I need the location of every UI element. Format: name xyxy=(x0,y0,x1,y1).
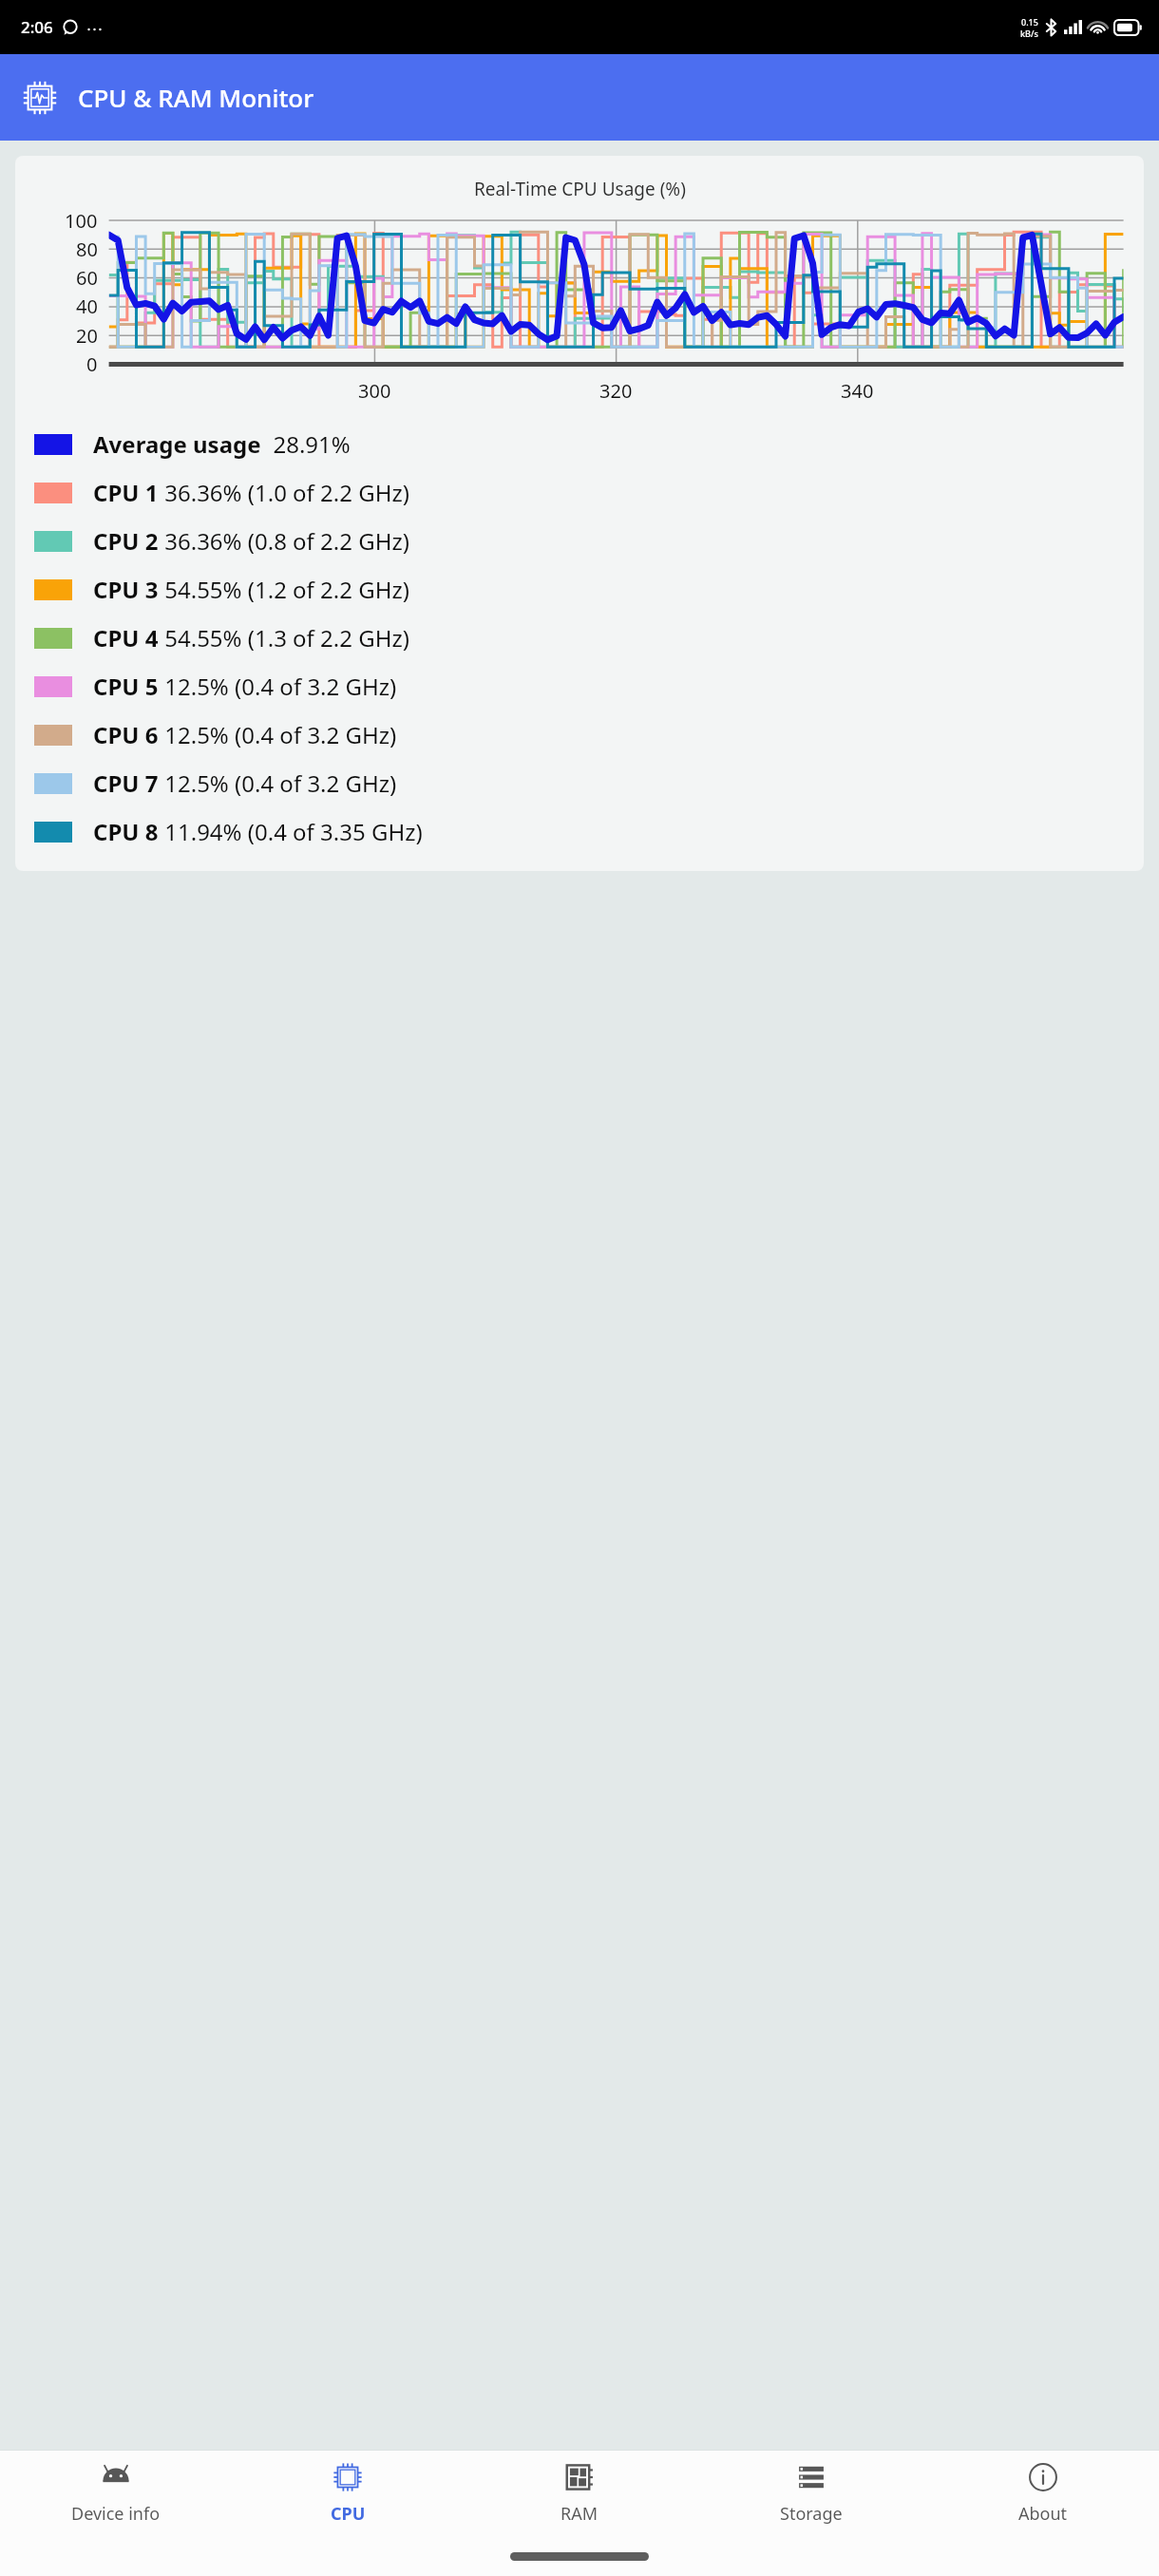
button[interactable]: CPU 2 xyxy=(15,517,1144,565)
button[interactable]: CPU 7 xyxy=(15,759,1144,807)
staticText: 300 xyxy=(358,378,391,404)
staticText: 0 xyxy=(86,351,98,377)
staticText: 28.91% xyxy=(261,428,351,460)
staticText: 20 xyxy=(76,323,98,349)
button[interactable]: CPU 5 xyxy=(15,662,1144,710)
staticText: Storage xyxy=(780,2502,843,2526)
staticText: CPU 8 xyxy=(93,816,159,847)
button[interactable]: CPU 8 xyxy=(15,807,1144,856)
staticText: 36.36% (0.8 of 2.2 GHz) xyxy=(159,525,409,557)
staticText: 12.5% (0.4 of 3.2 GHz) xyxy=(159,719,397,750)
staticText: Device info xyxy=(71,2502,161,2526)
staticText: kB/s xyxy=(1020,28,1038,39)
staticText: CPU 1 xyxy=(93,477,159,508)
staticText: 11.94% (0.4 of 3.35 GHz) xyxy=(159,816,423,847)
staticText: 54.55% (1.2 of 2.2 GHz) xyxy=(159,574,409,605)
staticText: 12.5% (0.4 of 3.2 GHz) xyxy=(159,671,397,702)
button[interactable]: Storage xyxy=(695,2451,927,2536)
staticText: 40 xyxy=(76,294,98,319)
staticText: 320 xyxy=(599,378,633,404)
staticText: 54.55% (1.3 of 2.2 GHz) xyxy=(159,622,409,653)
button[interactable]: About xyxy=(927,2451,1159,2536)
staticText: 100 xyxy=(65,208,98,234)
staticText: Average usage xyxy=(93,428,261,460)
button[interactable]: RAM xyxy=(464,2451,695,2536)
staticText: 36.36% (1.0 of 2.2 GHz) xyxy=(159,477,409,508)
staticText: Real-Time CPU Usage (%) xyxy=(474,177,686,201)
button[interactable]: CPU 6 xyxy=(15,710,1144,759)
button[interactable]: Average usage xyxy=(15,420,1144,468)
button[interactable]: CPU 1 xyxy=(15,468,1144,517)
button[interactable]: CPU 4 xyxy=(15,614,1144,662)
staticText: 2:06 xyxy=(21,16,53,38)
staticText: 340 xyxy=(841,378,874,404)
staticText: CPU 5 xyxy=(93,671,159,702)
staticText: About xyxy=(1018,2502,1068,2526)
staticText: 0.15 xyxy=(1021,16,1038,28)
staticText: 80 xyxy=(76,237,98,262)
staticText: CPU & RAM Monitor xyxy=(78,81,314,114)
staticText: RAM xyxy=(560,2502,598,2526)
staticText: 12.5% (0.4 of 3.2 GHz) xyxy=(159,767,397,799)
staticText: CPU 7 xyxy=(93,767,159,799)
button[interactable]: CPU 3 xyxy=(15,565,1144,614)
staticText: CPU xyxy=(331,2502,366,2526)
staticText: CPU 3 xyxy=(93,574,159,605)
staticText: CPU 2 xyxy=(93,525,159,557)
staticText: 60 xyxy=(76,265,98,291)
staticText: CPU 6 xyxy=(93,719,159,750)
staticText: CPU 4 xyxy=(93,622,159,653)
button[interactable]: CPU xyxy=(232,2451,464,2536)
button[interactable]: Device info xyxy=(0,2451,232,2536)
